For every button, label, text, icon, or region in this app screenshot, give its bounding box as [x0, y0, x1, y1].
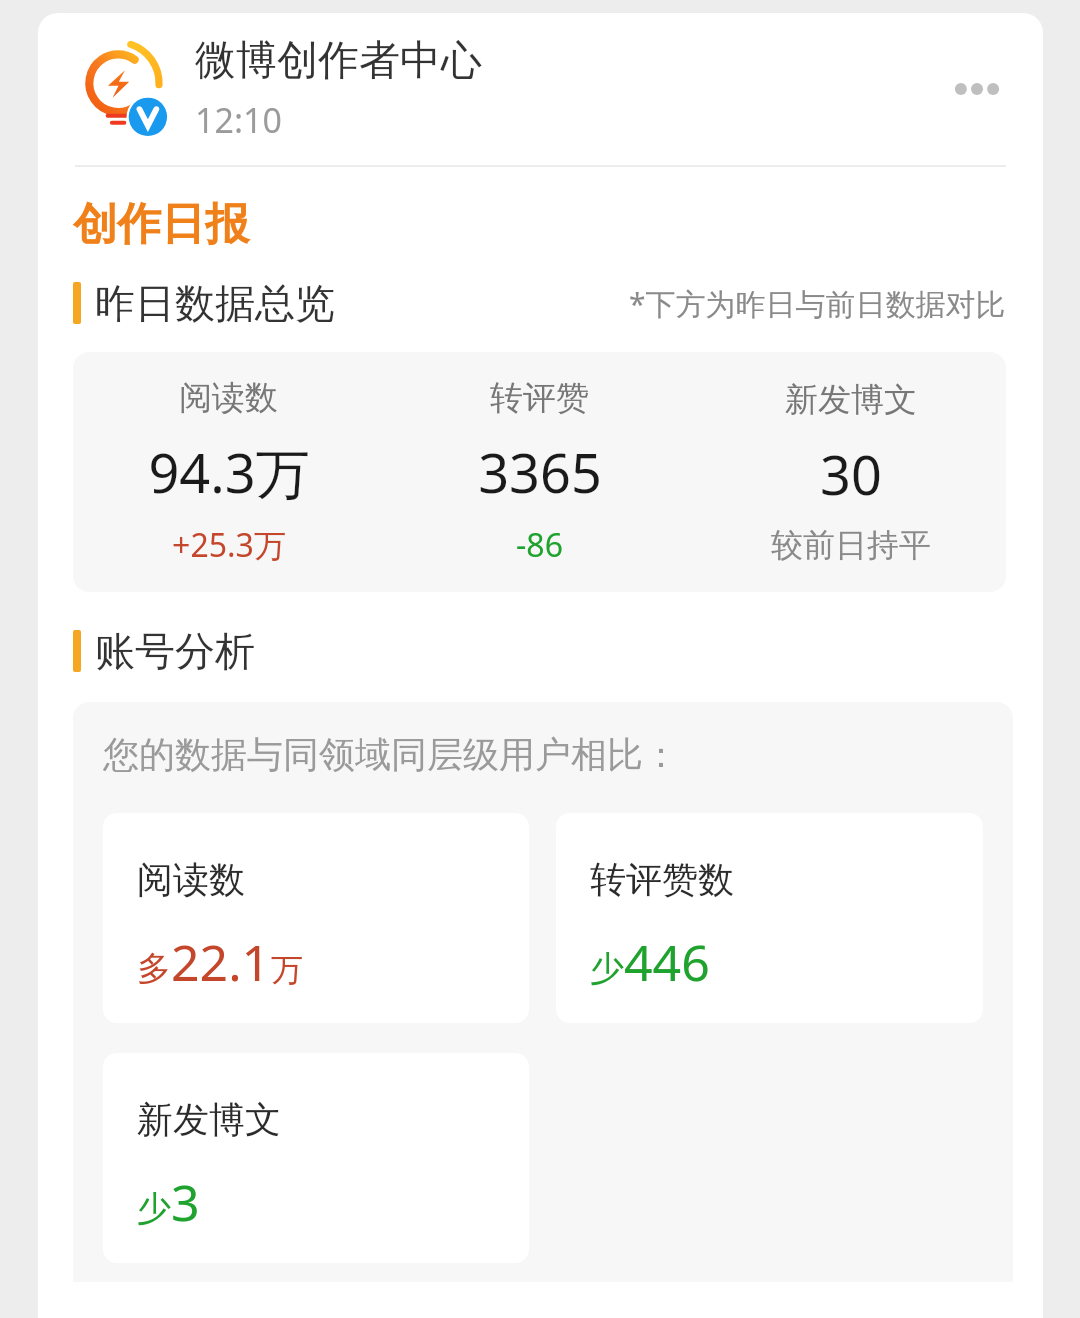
- button[interactable]: 新发博文: [103, 1053, 529, 1263]
- staticText: 阅读数: [179, 377, 278, 419]
- staticText: 转评赞: [490, 377, 589, 419]
- button[interactable]: 阅读数: [103, 813, 529, 1023]
- staticText: 转评赞数: [590, 857, 734, 902]
- button[interactable]: More options: [941, 53, 1013, 125]
- staticText: 22.1: [171, 928, 271, 996]
- staticText: 昨日数据总览: [95, 278, 335, 328]
- staticText: 阅读数: [137, 857, 245, 902]
- staticText: 446: [624, 928, 710, 996]
- staticText: 创作日报: [73, 197, 249, 252]
- staticText: 较前日持平: [771, 525, 931, 565]
- button[interactable]: 阅读数: [73, 352, 1006, 592]
- button[interactable]: 转评赞数: [556, 813, 983, 1023]
- staticText: *下方为昨日与前日数据对比: [629, 283, 1006, 324]
- staticText: 您的数据与同领域同层级用户相比：: [103, 732, 679, 777]
- staticText: 多: [137, 947, 171, 990]
- staticText: 少: [590, 947, 624, 990]
- staticText: 万: [271, 950, 303, 990]
- staticText: 3: [171, 1168, 200, 1236]
- staticText: -86: [516, 523, 563, 567]
- staticText: 12:10: [195, 97, 282, 143]
- button[interactable]: 微博创作者中心: [38, 13, 1043, 165]
- staticText: +25.3万: [172, 523, 286, 567]
- staticText: 3365: [478, 435, 602, 509]
- staticText: 少: [137, 1187, 171, 1230]
- staticText: 94.3万: [148, 435, 310, 509]
- staticText: 新发博文: [137, 1097, 281, 1142]
- staticText: 账号分析: [95, 626, 255, 676]
- staticText: 微博创作者中心: [195, 35, 482, 87]
- staticText: 新发博文: [785, 379, 917, 421]
- staticText: 30: [820, 437, 882, 511]
